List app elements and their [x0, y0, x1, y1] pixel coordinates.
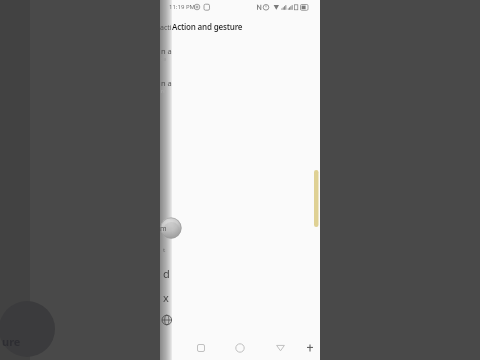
button[interactable]: Action and gesture	[172, 21, 243, 32]
staticText: n a	[161, 46, 172, 56]
staticText: x	[163, 290, 169, 305]
button[interactable]	[231, 338, 249, 356]
staticText: m	[160, 224, 167, 234]
staticText: se	[161, 56, 167, 63]
staticText: n a	[161, 78, 172, 88]
button[interactable]	[271, 338, 289, 356]
staticText: 11:19 PM	[169, 3, 195, 11]
staticText: t	[163, 246, 166, 254]
button[interactable]	[302, 338, 318, 356]
staticText: acti	[160, 23, 172, 33]
button[interactable]	[190, 338, 208, 356]
staticText: d	[163, 266, 170, 281]
staticText: re	[161, 88, 166, 95]
staticText: ure	[2, 334, 21, 349]
